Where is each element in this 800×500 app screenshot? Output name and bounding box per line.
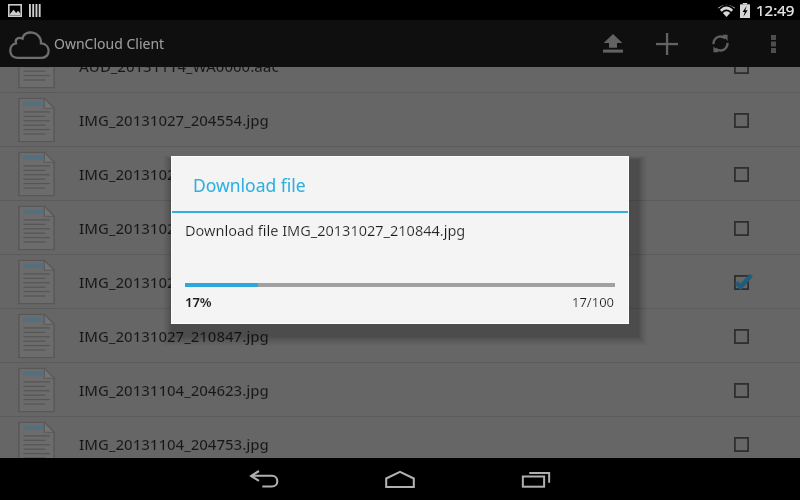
staticText: Download file (193, 173, 306, 197)
button[interactable]: Select file (723, 67, 759, 84)
button[interactable]: Select file (723, 372, 759, 408)
button[interactable]: Select file (723, 102, 759, 138)
button[interactable]: IMG_20131104_204623.jpg (0, 363, 800, 416)
staticText: 17% (185, 293, 212, 311)
staticText: 12:49 (756, 0, 795, 20)
button[interactable]: Refresh (695, 20, 746, 67)
button[interactable]: IMG_20131027_210847.jpg (0, 309, 800, 362)
button[interactable]: Select file (723, 210, 759, 246)
button[interactable]: More options (757, 20, 790, 67)
staticText: IMG_20131027_210846.jpg (79, 272, 269, 292)
button[interactable]: AUD_20131114_WA0000.aac (0, 67, 800, 92)
staticText: 17/100 (572, 293, 615, 311)
button[interactable]: Select file (723, 318, 759, 354)
staticText: OwnCloud Client (54, 34, 165, 53)
button[interactable]: OwnCloud Client (9, 20, 165, 67)
staticText: AUD_20131114_WA0000.aac (79, 67, 279, 76)
staticText: Download file IMG_20131027_210844.jpg (185, 220, 466, 240)
button[interactable]: IMG_20131104_204753.jpg (0, 417, 800, 458)
button[interactable]: Select file (723, 156, 759, 192)
staticText: IMG_20131027_210844.jpg (79, 164, 269, 184)
button[interactable]: IMG_20131027_210846.jpg (0, 255, 800, 308)
button[interactable]: Select file (723, 426, 759, 458)
staticText: IMG_20131027_210847.jpg (79, 326, 269, 346)
staticText: IMG_20131104_204623.jpg (79, 380, 269, 400)
button[interactable]: Select file (723, 264, 759, 300)
button[interactable]: Home (332, 458, 468, 500)
staticText: IMG_20131027_204554.jpg (79, 110, 269, 130)
button[interactable]: IMG_20131027_204554.jpg (0, 93, 800, 146)
button[interactable]: IMG_20131027_210845.jpg (0, 201, 800, 254)
staticText: IMG_20131104_204753.jpg (79, 434, 269, 454)
button[interactable]: Add (641, 20, 693, 67)
button[interactable]: IMG_20131027_210844.jpg (0, 147, 800, 200)
button[interactable]: Back (196, 458, 332, 500)
button[interactable]: Recent apps (468, 458, 604, 500)
button[interactable]: Upload (587, 20, 639, 67)
staticText: IMG_20131027_210845.jpg (79, 218, 269, 238)
